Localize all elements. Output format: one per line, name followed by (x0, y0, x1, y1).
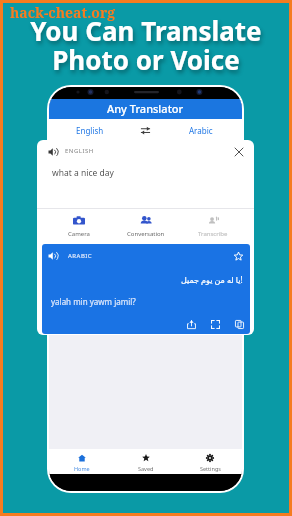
button[interactable]: Transcribe (179, 209, 246, 243)
button[interactable]: Conversation (112, 209, 179, 243)
staticText: yalah min yawm jamil? (51, 296, 136, 307)
staticText: ARABIC (68, 252, 93, 260)
staticText: Conversation (127, 230, 165, 238)
button[interactable]: Favorite (230, 248, 246, 264)
staticText: Transcribe (198, 230, 228, 238)
button[interactable]: Settings (178, 449, 242, 474)
button[interactable]: Saved (114, 449, 178, 474)
button[interactable]: Any Translator (49, 99, 242, 119)
staticText: يا له من يوم جميل! (181, 274, 243, 285)
staticText: English (76, 125, 104, 136)
staticText: Any Translator (107, 101, 184, 116)
staticText: what a nice day (52, 167, 114, 179)
button[interactable]: Arabic (160, 119, 242, 141)
button[interactable]: Share (182, 315, 200, 333)
button[interactable]: Camera (45, 209, 112, 243)
staticText: Settings (200, 465, 221, 472)
button[interactable]: Speak Arabic text (45, 248, 61, 264)
staticText: hack-cheat.org (10, 3, 116, 22)
button[interactable]: English (49, 119, 130, 141)
staticText: You Can Translate Photo or Voice (0, 13, 292, 77)
button[interactable]: Close (231, 144, 247, 160)
staticText: Arabic (189, 125, 213, 136)
button[interactable]: Copy (230, 315, 248, 333)
staticText: Home (74, 465, 90, 472)
button[interactable]: Fullscreen (206, 315, 224, 333)
button[interactable]: Speak English text (45, 144, 61, 160)
staticText: Saved (138, 465, 154, 472)
button[interactable]: Swap languages (130, 119, 160, 141)
staticText: Camera (68, 230, 90, 238)
staticText: ENGLISH (65, 147, 94, 155)
button[interactable]: Home (49, 449, 114, 474)
